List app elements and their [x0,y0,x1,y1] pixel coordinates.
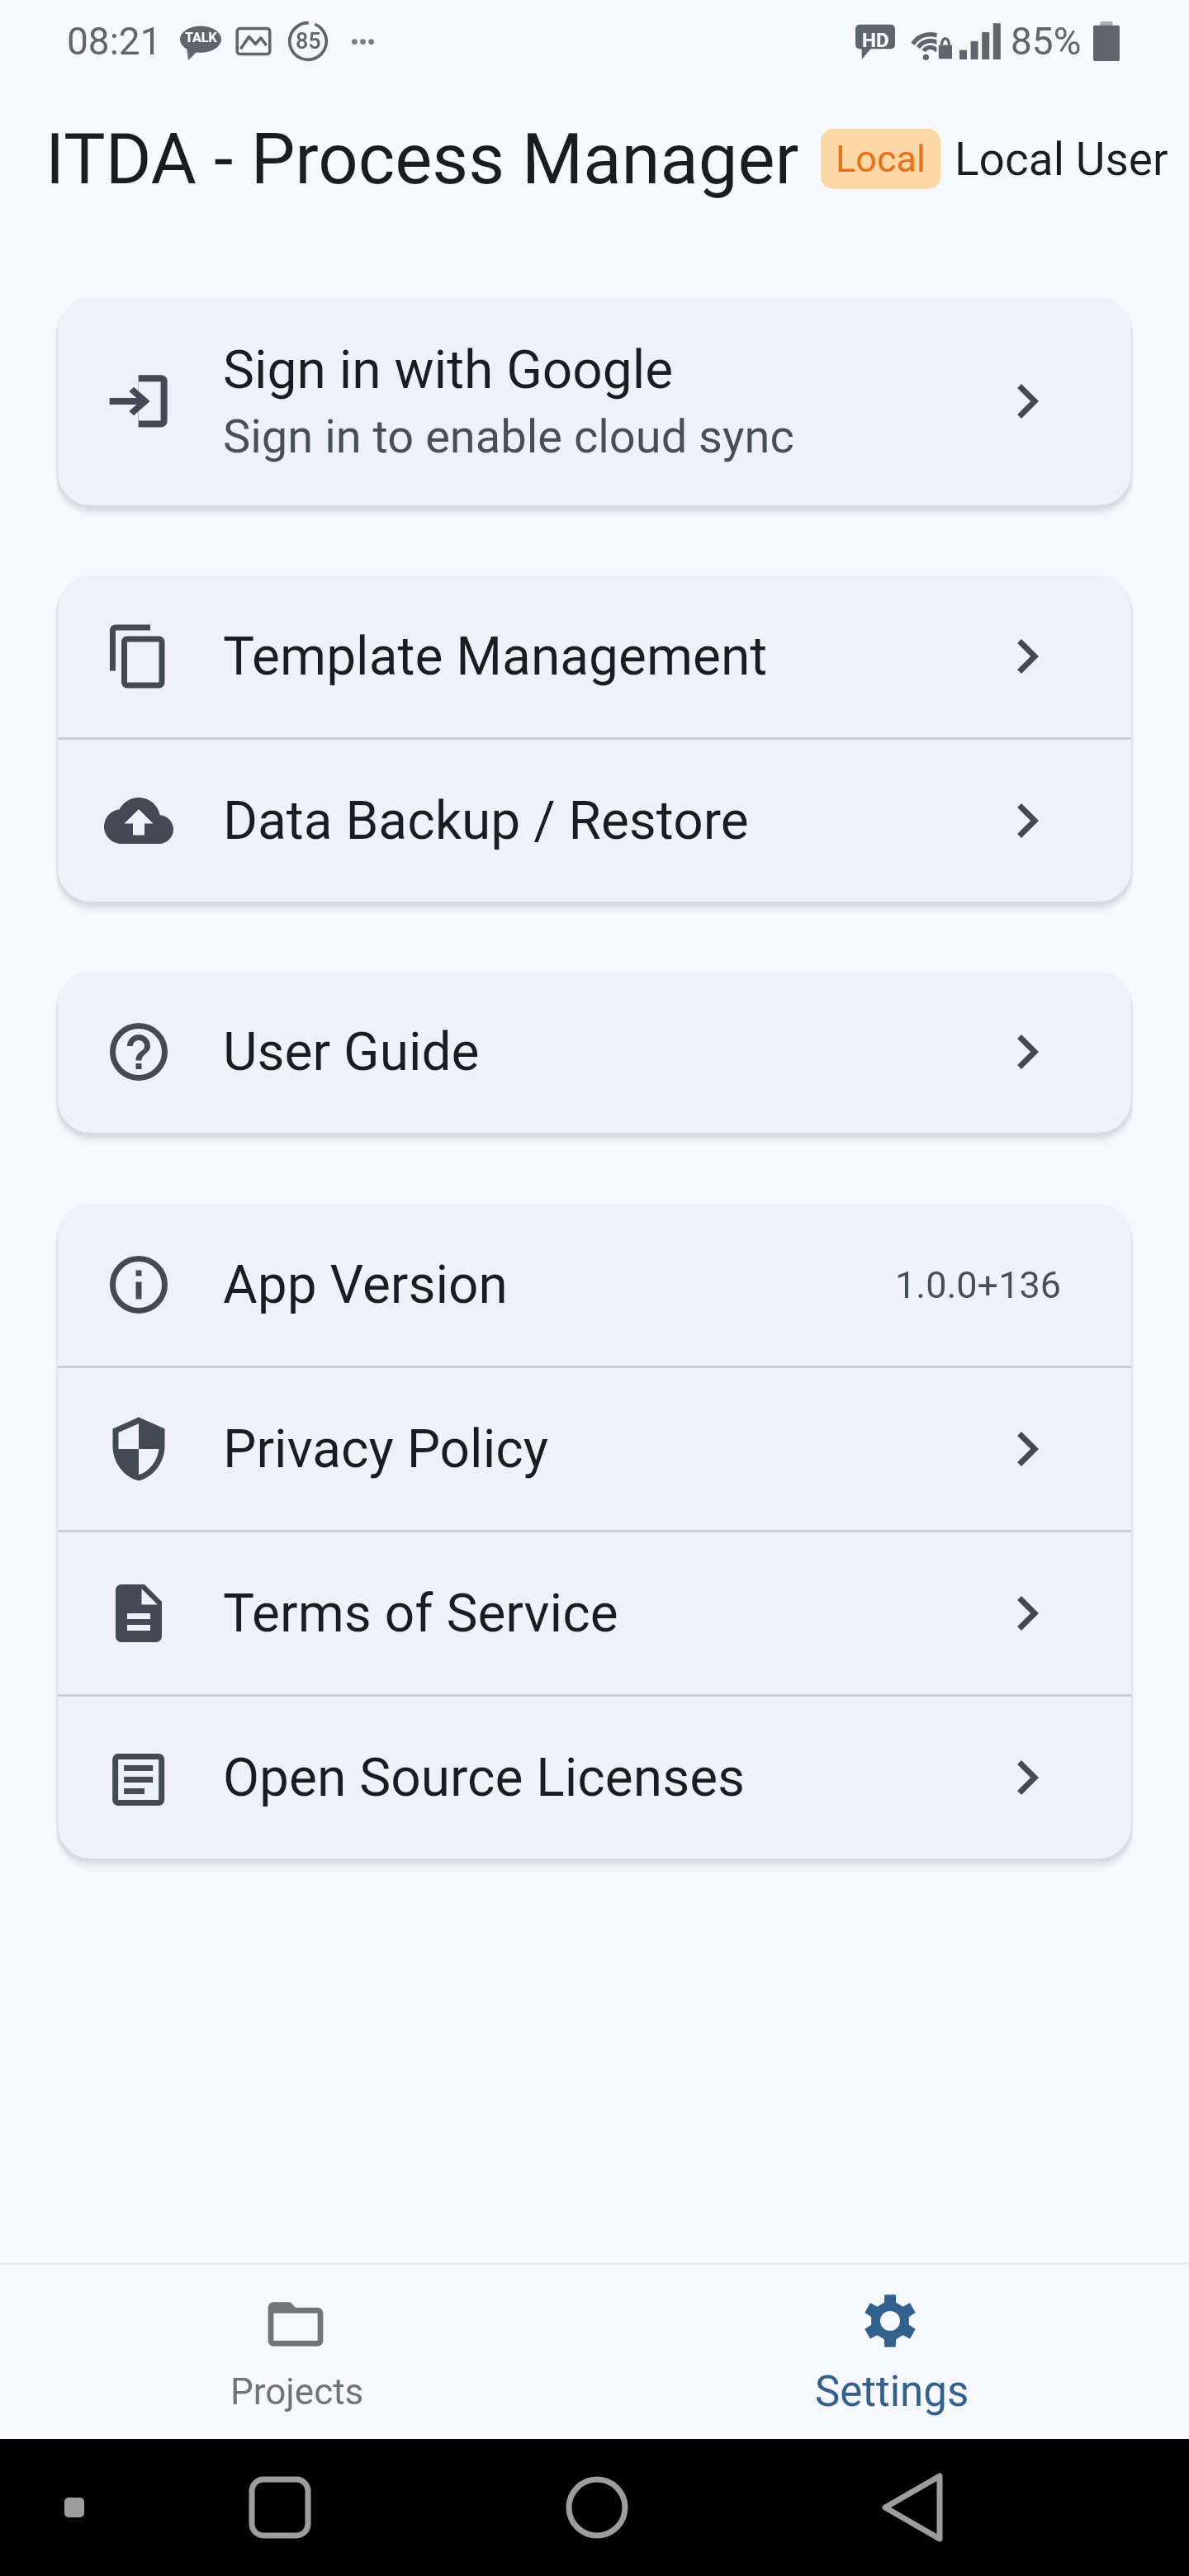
other: System navigation [0,2439,1189,2576]
staticText: 85 [296,28,321,54]
staticText: Sign in with Google [223,339,674,401]
staticText: TALK [185,30,217,45]
button[interactable]: Privacy Policy [58,1368,1131,1530]
staticText: HD [862,29,889,52]
staticText: Local [836,137,926,181]
button[interactable]: Projects [0,2265,594,2439]
staticText: User Guide [223,1021,480,1083]
staticText: App Version [223,1254,508,1316]
staticText: Data Backup / Restore [223,790,749,852]
staticText: ITDA - Process Manager [45,118,799,201]
button[interactable]: Settings [594,2265,1189,2439]
staticText: Projects [230,2370,364,2413]
button[interactable]: App Version [58,1204,1131,1366]
button[interactable]: Template Management [58,575,1131,737]
staticText: Terms of Service [223,1583,618,1645]
staticText: Settings [815,2367,969,2417]
button[interactable]: User Guide [58,971,1131,1133]
staticText: Local User [955,133,1168,186]
button[interactable]: Data Backup / Restore [58,740,1131,902]
button[interactable]: Terms of Service [58,1532,1131,1694]
staticText: Open Source Licenses [223,1747,746,1809]
staticText: Template Management [223,626,768,688]
staticText: 85% [1011,19,1082,64]
button[interactable]: Sign in with Google [58,297,1131,505]
staticText: 1.0.0+136 [895,1263,1062,1307]
button[interactable]: Open Source Licenses [58,1697,1131,1859]
staticText: Sign in to enable cloud sync [223,410,794,464]
staticText: 08:21 [67,19,162,64]
staticText: Privacy Policy [223,1418,548,1480]
